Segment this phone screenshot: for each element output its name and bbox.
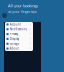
staticText: >: [30, 47, 32, 50]
staticText: >: [30, 42, 32, 45]
staticText: Display: [10, 37, 19, 41]
staticText: Notifications: [10, 27, 27, 31]
button[interactable]: Storage: [5, 41, 33, 46]
staticText: Account: [10, 23, 21, 26]
button[interactable]: Privacy: [5, 32, 33, 36]
button[interactable]: About: [5, 46, 33, 51]
staticText: >: [30, 32, 32, 36]
staticText: Storage: [10, 42, 20, 45]
staticText: About: [10, 47, 19, 50]
staticText: >: [30, 23, 32, 26]
button[interactable]: Account: [5, 22, 33, 27]
staticText: All your bookings: [8, 3, 38, 8]
staticText: >: [30, 37, 32, 41]
staticText: >: [30, 27, 32, 31]
button[interactable]: Display: [5, 36, 33, 41]
staticText: at your fingertips: [8, 9, 37, 14]
staticText: Privacy: [10, 32, 18, 36]
button[interactable]: Notifications: [5, 27, 33, 32]
